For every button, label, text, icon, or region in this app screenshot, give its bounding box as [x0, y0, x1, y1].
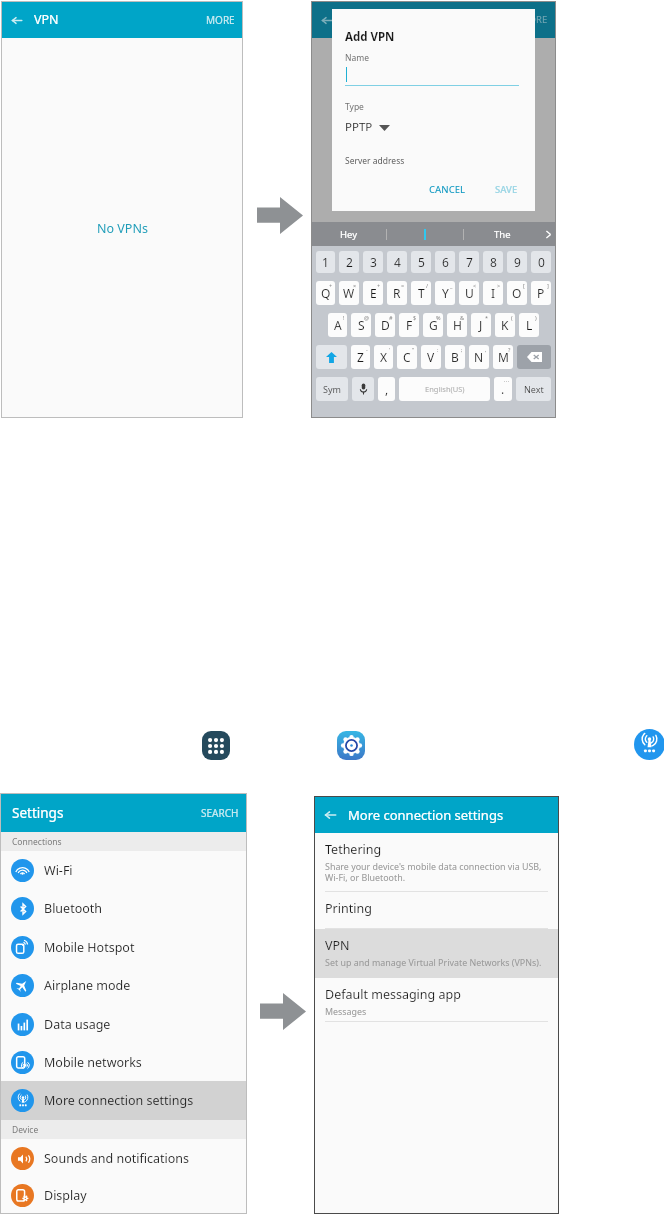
staticText: X	[380, 349, 388, 365]
staticText: U	[465, 285, 474, 301]
staticText: *	[485, 314, 489, 321]
staticText: .	[501, 381, 505, 397]
button[interactable]: Sounds and notifications	[0, 1139, 247, 1177]
button[interactable]: Mobile networks	[0, 1043, 247, 1081]
button[interactable]: 6	[435, 251, 455, 273]
button[interactable]: Y	[435, 281, 455, 305]
button[interactable]: Apps	[202, 731, 230, 760]
button[interactable]: C	[397, 345, 417, 369]
staticText: 3	[370, 254, 377, 270]
button[interactable]: 0	[531, 251, 551, 273]
button[interactable]: E	[363, 281, 383, 305]
button[interactable]: Shift	[316, 345, 347, 369]
button[interactable]: Default messaging app	[314, 978, 559, 1022]
staticText: A	[334, 317, 342, 333]
staticText: ;	[461, 346, 463, 353]
button[interactable]: SAVE	[491, 179, 522, 200]
button[interactable]: B	[445, 345, 465, 369]
staticText: !	[343, 314, 345, 321]
button[interactable]: Q	[316, 281, 335, 305]
button[interactable]: Bluetooth	[0, 889, 247, 928]
staticText: Q	[321, 285, 331, 301]
button[interactable]: G	[423, 313, 443, 337]
button[interactable]: 9	[507, 251, 527, 273]
staticText: Share your device's mobile data connecti…	[325, 860, 542, 884]
button[interactable]: R	[387, 281, 407, 305]
button[interactable]: MORE	[206, 13, 243, 27]
button[interactable]: Next	[516, 377, 551, 401]
button[interactable]: J	[471, 313, 491, 337]
button[interactable]: 1	[316, 251, 335, 273]
staticText: B	[451, 349, 459, 365]
staticText: 1	[322, 254, 329, 270]
button[interactable]: 3	[363, 251, 383, 273]
button[interactable]: 8	[483, 251, 503, 273]
staticText: =	[401, 282, 405, 289]
button[interactable]: Tethering	[314, 833, 559, 892]
button[interactable]: F	[399, 313, 419, 337]
button[interactable]: T	[411, 281, 431, 305]
staticText: Server address	[345, 155, 405, 167]
button[interactable]: Backspace	[517, 345, 551, 369]
staticText: 0	[538, 254, 545, 270]
button[interactable]: 5	[411, 251, 431, 273]
staticText: 5	[418, 254, 425, 270]
button[interactable]: Back	[314, 799, 346, 831]
staticText: Device	[12, 1124, 39, 1136]
button[interactable]: U	[459, 281, 479, 305]
button[interactable]: Back	[1, 4, 33, 36]
button[interactable]: CANCEL	[425, 179, 470, 200]
button[interactable]: Wi-Fi	[0, 851, 247, 889]
staticText: )	[535, 314, 537, 321]
staticText: Name	[345, 52, 369, 64]
button[interactable]: A	[328, 313, 347, 337]
button[interactable]: V	[421, 345, 441, 369]
staticText: ⋯	[504, 378, 510, 384]
staticText: K	[501, 317, 509, 333]
staticText: PPTP	[345, 119, 373, 135]
button[interactable]: Data usage	[0, 1005, 247, 1043]
button[interactable]: Z	[351, 345, 370, 369]
button[interactable]: 4	[387, 251, 407, 273]
button[interactable]: H	[447, 313, 467, 337]
button[interactable]: X	[374, 345, 393, 369]
button[interactable]: 7	[459, 251, 479, 273]
button[interactable]: S	[351, 313, 371, 337]
button[interactable]: 2	[339, 251, 359, 273]
button[interactable]: Airplane mode	[0, 966, 247, 1005]
staticText: %	[436, 314, 441, 321]
staticText: ]	[547, 282, 549, 289]
staticText: J	[479, 317, 483, 333]
button[interactable]: Settings	[337, 731, 365, 760]
button[interactable]: More connection settings	[634, 729, 664, 760]
staticText: Z	[357, 349, 364, 365]
staticText: -	[366, 346, 368, 353]
button[interactable]: Printing	[314, 892, 559, 929]
button[interactable]: More connection settings	[0, 1081, 247, 1120]
staticText: ×	[353, 282, 357, 289]
button[interactable]: VPN	[314, 929, 559, 978]
button[interactable]: Voice input	[352, 377, 374, 401]
button[interactable]: O	[507, 281, 527, 305]
button[interactable]: L	[519, 313, 539, 337]
button[interactable]: .	[494, 377, 512, 401]
staticText: Data usage	[44, 1016, 111, 1033]
staticText: &	[460, 314, 465, 321]
button[interactable]: N	[469, 345, 489, 369]
button[interactable]: D	[375, 313, 395, 337]
button[interactable]: W	[339, 281, 359, 305]
button[interactable]: Display	[0, 1177, 247, 1214]
staticText: English(US)	[425, 384, 465, 394]
button[interactable]: Mobile Hotspot	[0, 928, 247, 966]
staticText: Wi-Fi	[44, 862, 73, 879]
button[interactable]: P	[531, 281, 551, 305]
button[interactable]: I	[483, 281, 503, 305]
button[interactable]: English(US)	[399, 377, 490, 401]
staticText: Connections	[12, 836, 62, 848]
button[interactable]: K	[495, 313, 515, 337]
button[interactable]: SEARCH	[201, 806, 239, 820]
staticText: More connection settings	[44, 1092, 194, 1109]
button[interactable]: ,	[378, 377, 395, 401]
button[interactable]: Sym	[316, 377, 348, 401]
button[interactable]: M	[493, 345, 513, 369]
